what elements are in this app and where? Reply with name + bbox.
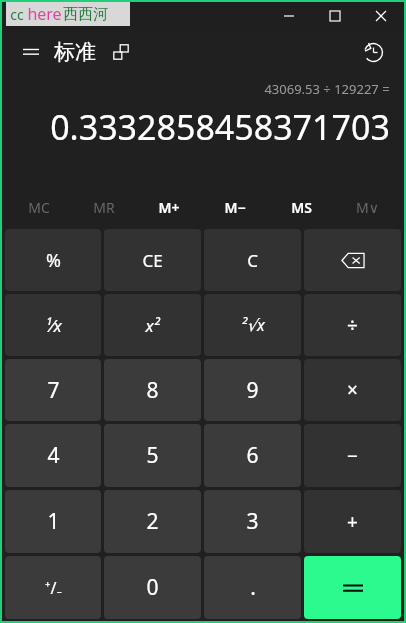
button[interactable]: C [204,229,301,291]
button[interactable]: 3 [204,490,301,553]
button[interactable]: ÷ [304,294,401,356]
button[interactable]: Close [358,2,404,30]
button[interactable]: Minimize [266,2,312,30]
staticText: ÷ [347,312,358,338]
button[interactable]: M∨ [334,187,400,227]
button[interactable]: M+ [136,187,202,227]
staticText: − [347,443,358,469]
staticText: 9 [246,376,259,405]
staticText: M∨ [356,198,379,217]
staticText: MC [28,198,50,217]
staticText: M+ [158,198,180,217]
button[interactable]: 0 [104,556,201,619]
button[interactable]: History [356,35,390,69]
button[interactable] [304,556,401,619]
staticText: CE [142,249,163,272]
staticText: 43069.53 ÷ 129227 = [264,80,390,98]
staticText: x² [145,314,160,337]
staticText: 8 [146,376,159,405]
staticText: C [247,249,258,272]
staticText: 7 [47,376,60,405]
staticText: 4 [47,441,60,470]
button[interactable]: MC [6,187,71,227]
staticText: 1 [47,507,60,536]
staticText: 标准 [54,39,96,65]
button[interactable]: 7 [5,359,101,421]
staticText: % [46,248,61,273]
staticText: 0.3332858458371703 [50,104,390,150]
button[interactable]: . [204,556,301,619]
button[interactable]: MR [71,187,136,227]
staticText: cc [10,5,24,24]
staticText: ⁺/₋ [45,577,62,599]
button[interactable]: MS [268,187,334,227]
staticText: × [347,377,358,403]
button[interactable]: 1 [5,490,101,553]
button[interactable]: 2 [104,490,201,553]
staticText: MS [291,198,312,217]
button[interactable]: ⁺/₋ [5,556,101,619]
button[interactable]: − [304,424,401,487]
staticText: 西西河 [63,5,108,24]
button[interactable]: Keep on top [106,37,136,67]
button[interactable]: × [304,359,401,421]
button[interactable]: Backspace [304,229,401,291]
button[interactable]: 9 [204,359,301,421]
button[interactable]: 8 [104,359,201,421]
staticText: . [250,573,256,602]
button[interactable]: 6 [204,424,301,487]
button[interactable]: Maximize [312,2,358,30]
staticText: M− [224,198,246,217]
staticText: ²√x [241,314,265,336]
staticText: 6 [246,441,259,470]
button[interactable]: + [304,490,401,553]
button[interactable]: Menu [14,35,48,69]
staticText: 3 [246,507,259,536]
button[interactable]: 5 [104,424,201,487]
staticText: MR [93,198,115,217]
staticText: + [347,509,358,535]
staticText: here [27,3,62,25]
staticText: 2 [146,507,159,536]
button[interactable]: % [5,229,101,291]
button[interactable]: ²√x [204,294,301,356]
staticText: ¹⁄x [45,314,62,337]
staticText: 5 [146,441,159,470]
button[interactable]: CE [104,229,201,291]
button[interactable]: M− [202,187,268,227]
staticText: 0 [146,573,159,602]
button[interactable]: ¹⁄x [5,294,101,356]
button[interactable]: x² [104,294,201,356]
button[interactable]: 4 [5,424,101,487]
